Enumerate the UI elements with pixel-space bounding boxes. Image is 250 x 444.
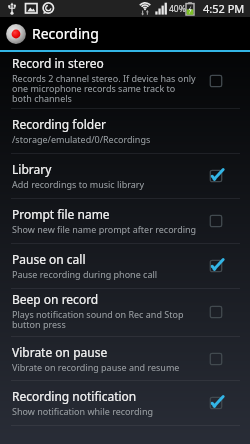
staticText: Plays notification sound on Rec and Stop… [12,308,197,331]
staticText: Record in stereo [12,55,104,71]
staticText: Recording notification [12,388,137,404]
staticText: /storage/emulated/0/Recordings [12,133,151,145]
staticText: Show notification while recording [12,405,154,417]
button[interactable]: Prompt file name [0,198,250,243]
staticText: Add recordings to music library [12,178,145,190]
staticText: 40% [169,3,186,15]
button[interactable]: Recording [0,17,250,50]
button[interactable]: Recording folder [0,108,250,153]
button[interactable]: Recording notification [0,380,250,425]
button[interactable]: Beep on record [0,288,250,335]
staticText: Beep on record [12,291,99,307]
button[interactable]: Vibrate on pause [0,336,250,381]
staticText: Vibrate on pause [12,344,108,360]
button[interactable]: Library [0,153,250,198]
staticText: Pause on call [12,251,86,267]
staticText: Records 2 channel stereo. If device has … [12,72,197,105]
staticText: Recording [32,24,99,43]
button[interactable]: Record in stereo [0,52,250,109]
button[interactable]: Pause on call [0,243,250,288]
staticText: Show new file name prompt after recordin… [12,223,197,235]
staticText: 4:52 PM [203,1,245,16]
staticText: Vibrate on recording pause and resume [12,361,180,373]
staticText: Recording folder [12,116,106,132]
staticText: Pause recording during phone call [12,268,158,280]
staticText: Prompt file name [12,206,110,222]
staticText: Library [12,161,52,177]
